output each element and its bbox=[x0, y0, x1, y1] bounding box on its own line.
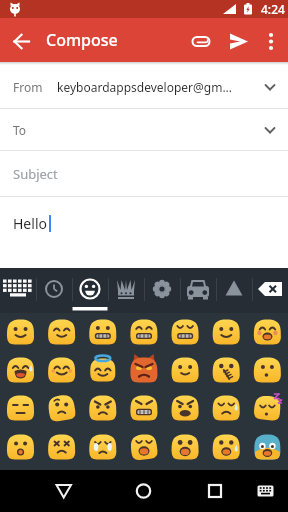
staticText: To bbox=[13, 122, 27, 138]
button[interactable]: Subject bbox=[0, 151, 288, 196]
button[interactable] bbox=[180, 268, 216, 313]
button[interactable] bbox=[258, 18, 288, 62]
button[interactable]: Hello bbox=[0, 197, 288, 268]
staticText: From bbox=[13, 79, 43, 95]
button[interactable] bbox=[0, 18, 44, 62]
staticText: 4:24 bbox=[261, 1, 285, 17]
button[interactable] bbox=[0, 268, 36, 313]
staticText: Hello bbox=[13, 214, 47, 233]
staticText: Subject bbox=[13, 165, 58, 183]
button[interactable] bbox=[0, 470, 96, 512]
button[interactable] bbox=[182, 18, 220, 62]
staticText: Compose bbox=[46, 29, 118, 51]
button[interactable] bbox=[220, 18, 258, 62]
staticText: keyboardappsdeveloper@gm... bbox=[57, 79, 233, 95]
button[interactable] bbox=[96, 470, 192, 512]
button[interactable] bbox=[144, 268, 180, 313]
button[interactable] bbox=[216, 268, 252, 313]
button[interactable] bbox=[72, 268, 108, 313]
button[interactable] bbox=[252, 268, 288, 313]
button[interactable]: To bbox=[0, 109, 288, 150]
button[interactable]: From bbox=[0, 65, 288, 108]
button[interactable] bbox=[36, 268, 72, 313]
button[interactable] bbox=[192, 470, 288, 512]
button[interactable] bbox=[108, 268, 144, 313]
